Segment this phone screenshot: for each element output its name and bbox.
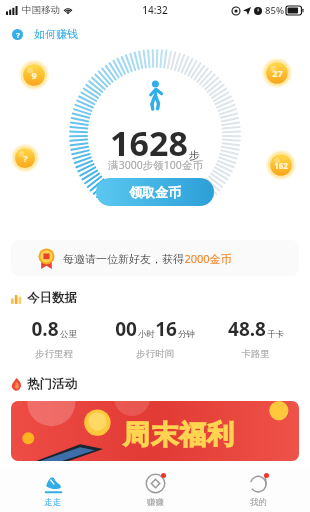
- button[interactable]: 我的: [207, 468, 310, 512]
- staticText: 14:32: [142, 3, 168, 17]
- staticText: 满3000步领100金币: [108, 158, 203, 172]
- staticText: 2000金币: [184, 251, 232, 266]
- staticText: 利: [207, 418, 234, 452]
- staticText: 分钟: [178, 329, 195, 340]
- staticText: 00: [115, 316, 137, 342]
- staticText: 85%: [265, 4, 284, 17]
- button[interactable]: Coin 27: [262, 58, 292, 88]
- staticText: 今日数据: [27, 290, 77, 306]
- staticText: ?: [23, 152, 28, 164]
- staticText: 步: [189, 148, 200, 162]
- staticText: 走走: [44, 497, 61, 508]
- staticText: 卡路里: [241, 348, 270, 360]
- button[interactable]: 每邀请一位新好友，获得: [11, 240, 299, 276]
- staticText: 我的: [250, 497, 267, 508]
- staticText: 162: [274, 160, 288, 171]
- button[interactable]: ?: [10, 24, 80, 44]
- button[interactable]: Coin ?: [11, 144, 39, 172]
- staticText: 千卡: [267, 329, 284, 340]
- staticText: 周: [123, 418, 150, 452]
- staticText: 如何赚钱: [34, 27, 78, 41]
- staticText: 公里: [60, 329, 77, 340]
- staticText: 每邀请一位新好友，获得: [63, 252, 184, 266]
- button[interactable]: 赚赚: [104, 468, 207, 512]
- staticText: 热门活动: [27, 376, 77, 392]
- staticText: 48.8: [228, 316, 266, 342]
- button[interactable]: 周: [11, 401, 299, 461]
- button[interactable]: 领取金币: [96, 178, 214, 206]
- staticText: 27: [272, 67, 283, 79]
- staticText: 末: [151, 418, 178, 452]
- button[interactable]: 走走: [0, 468, 104, 512]
- staticText: 小时: [138, 329, 155, 340]
- staticText: 0.8: [31, 316, 59, 342]
- staticText: 1628: [110, 120, 188, 166]
- staticText: ?: [16, 30, 20, 40]
- staticText: 9: [31, 69, 37, 81]
- staticText: 16: [155, 316, 177, 342]
- staticText: 步行时间: [136, 348, 174, 360]
- staticText: 步行里程: [35, 348, 73, 360]
- staticText: 领取金币: [129, 184, 181, 200]
- staticText: 赚赚: [147, 497, 164, 508]
- staticText: 福: [179, 418, 206, 452]
- button[interactable]: Coin 9: [19, 60, 49, 90]
- button[interactable]: Coin 162: [266, 150, 296, 180]
- staticText: 中国移动: [22, 4, 60, 16]
